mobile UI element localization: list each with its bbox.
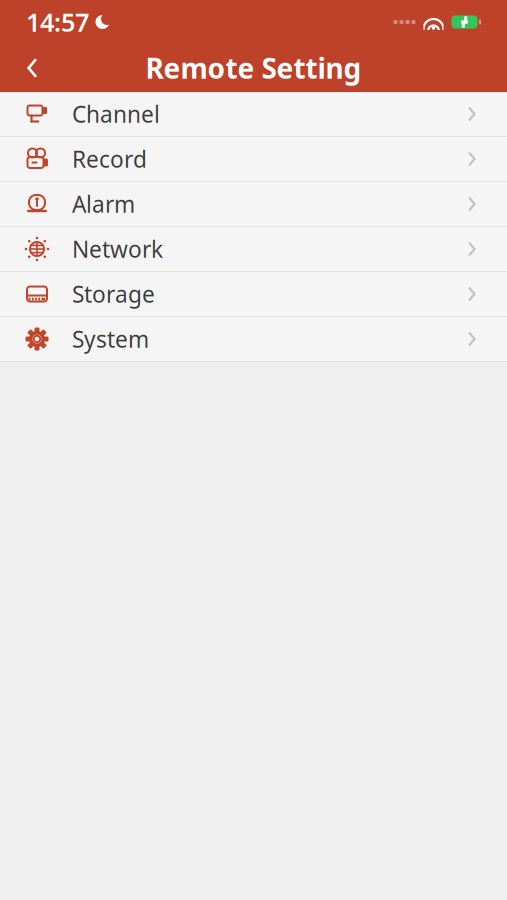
staticText: Storage xyxy=(72,279,155,309)
button[interactable]: Storage xyxy=(0,272,507,317)
staticText: System xyxy=(72,324,149,354)
staticText: Channel xyxy=(72,99,160,129)
staticText: Alarm xyxy=(72,189,135,219)
button[interactable]: Channel xyxy=(0,92,507,137)
staticText: Record xyxy=(72,144,147,174)
staticText: Network xyxy=(72,234,163,264)
button[interactable]: Back xyxy=(10,46,54,90)
staticText: Remote Setting xyxy=(145,49,361,87)
button[interactable]: Network xyxy=(0,227,507,272)
button[interactable]: Alarm xyxy=(0,182,507,227)
button[interactable]: System xyxy=(0,317,507,362)
button[interactable]: Record xyxy=(0,137,507,182)
staticText: 14:57 xyxy=(26,5,89,39)
